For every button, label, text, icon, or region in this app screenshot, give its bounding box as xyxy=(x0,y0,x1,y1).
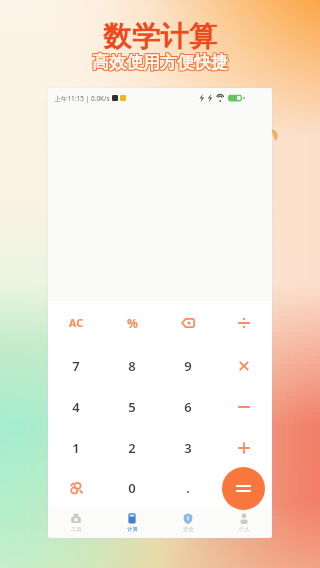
staticText: 高效使用方便快捷 xyxy=(93,52,229,73)
staticText: AC xyxy=(69,316,83,330)
button[interactable]: 8 xyxy=(104,345,160,386)
staticText: 0 xyxy=(128,479,136,497)
staticText: 高效使用方便快捷 xyxy=(93,51,229,72)
button[interactable]: 4 xyxy=(48,386,104,427)
button[interactable]: Multiply xyxy=(216,345,272,386)
staticText: 个人 xyxy=(239,526,250,533)
staticText: 高效使用方便快捷 xyxy=(91,53,227,74)
staticText: 高效使用方便快捷 xyxy=(91,52,227,73)
button[interactable]: 1 xyxy=(48,427,104,468)
button[interactable]: 5 xyxy=(104,386,160,427)
staticText: 高效使用方便快捷 xyxy=(92,51,228,72)
button[interactable]: . xyxy=(160,468,216,507)
staticText: 4 xyxy=(72,398,80,416)
button[interactable]: 2 xyxy=(104,427,160,468)
button[interactable]: 6 xyxy=(160,386,216,427)
staticText: 高效使用方便快捷 xyxy=(92,52,228,73)
button[interactable]: 0 xyxy=(104,468,160,507)
staticText: . xyxy=(186,479,190,497)
button[interactable]: 工具 xyxy=(48,507,104,538)
staticText: 工具 xyxy=(71,526,82,533)
staticText: 8 xyxy=(128,357,136,375)
staticText: 7 xyxy=(72,357,80,375)
button[interactable]: 9 xyxy=(160,345,216,386)
staticText: 高效使用方便快捷 xyxy=(91,51,227,72)
button[interactable]: 计算 xyxy=(104,507,160,538)
button[interactable]: Divide xyxy=(216,301,272,345)
button[interactable]: 安全 xyxy=(160,507,216,538)
staticText: 1 xyxy=(72,439,80,457)
button[interactable]: % xyxy=(104,301,160,345)
staticText: 上午11:15 | 0.0K/s xyxy=(54,94,110,103)
button[interactable]: Minus xyxy=(216,386,272,427)
staticText: 3 xyxy=(184,439,192,457)
button[interactable]: Scientific mode xyxy=(48,468,104,507)
staticText: % xyxy=(127,315,138,331)
staticText: 数学计算 xyxy=(103,19,218,54)
staticText: 5 xyxy=(128,398,136,416)
staticText: 计算 xyxy=(127,526,138,533)
button[interactable]: 7 xyxy=(48,345,104,386)
button[interactable]: AC xyxy=(48,301,104,345)
staticText: 2 xyxy=(128,439,136,457)
staticText: 6 xyxy=(184,398,192,416)
staticText: 安全 xyxy=(183,526,194,533)
button[interactable]: 个人 xyxy=(216,507,272,538)
button[interactable]: Plus xyxy=(216,427,272,468)
staticText: 高效使用方便快捷 xyxy=(92,53,228,74)
staticText: 9 xyxy=(184,357,192,375)
button[interactable]: 3 xyxy=(160,427,216,468)
staticText: 高效使用方便快捷 xyxy=(93,53,229,74)
button[interactable]: Equals xyxy=(222,467,265,510)
button[interactable]: Backspace xyxy=(160,301,216,345)
